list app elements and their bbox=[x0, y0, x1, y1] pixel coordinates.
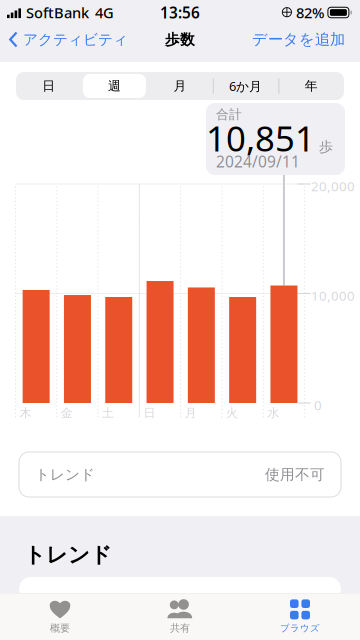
staticText: アクティビティ bbox=[23, 30, 128, 49]
staticText: 0 bbox=[314, 396, 322, 414]
staticText: トレンド bbox=[24, 542, 112, 568]
staticText: 共有 bbox=[170, 622, 190, 635]
button[interactable]: アクティビティ bbox=[0, 24, 128, 54]
staticText: 日 bbox=[42, 78, 55, 94]
staticText: 金 bbox=[61, 405, 73, 420]
button[interactable]: 共有 bbox=[120, 594, 240, 640]
staticText: 20,000 bbox=[311, 177, 355, 195]
staticText: トレンド bbox=[35, 465, 95, 484]
staticText: 概要 bbox=[50, 622, 70, 635]
button[interactable]: 月 bbox=[147, 72, 213, 100]
staticText: 月 bbox=[173, 78, 186, 94]
staticText: 月 bbox=[185, 405, 197, 420]
staticText: 10,000 bbox=[311, 286, 355, 305]
staticText: 合計 bbox=[216, 106, 242, 122]
button[interactable]: 年 bbox=[278, 72, 344, 100]
button[interactable]: トレンド bbox=[19, 452, 341, 497]
button[interactable]: 日 bbox=[16, 72, 82, 100]
staticText: 4G bbox=[95, 2, 114, 22]
staticText: 日 bbox=[143, 405, 155, 420]
staticText: データを追加 bbox=[252, 30, 345, 49]
button[interactable]: 概要 bbox=[0, 594, 120, 640]
staticText: 6か月 bbox=[229, 77, 262, 95]
staticText: 週 bbox=[108, 78, 121, 94]
staticText: 使用不可 bbox=[265, 465, 325, 484]
staticText: 土 bbox=[102, 405, 114, 420]
staticText: 水 bbox=[267, 405, 279, 420]
staticText: 82% bbox=[296, 2, 324, 22]
button[interactable]: ブラウズ bbox=[240, 594, 360, 640]
staticText: 2024/09/11 bbox=[216, 151, 300, 172]
staticText: 10,851 bbox=[206, 114, 315, 162]
button[interactable]: 週 bbox=[82, 72, 147, 100]
staticText: 木 bbox=[19, 405, 31, 420]
button[interactable]: 6か月 bbox=[213, 72, 278, 100]
staticText: 年 bbox=[305, 78, 318, 94]
staticText: ブラウズ bbox=[280, 622, 320, 634]
staticText: SoftBank bbox=[26, 2, 89, 22]
staticText: 歩 bbox=[319, 138, 333, 156]
button[interactable]: データを追加 bbox=[252, 24, 360, 54]
staticText: 火 bbox=[226, 405, 238, 420]
staticText: 歩数 bbox=[165, 30, 195, 49]
staticText: 13:56 bbox=[160, 2, 200, 23]
